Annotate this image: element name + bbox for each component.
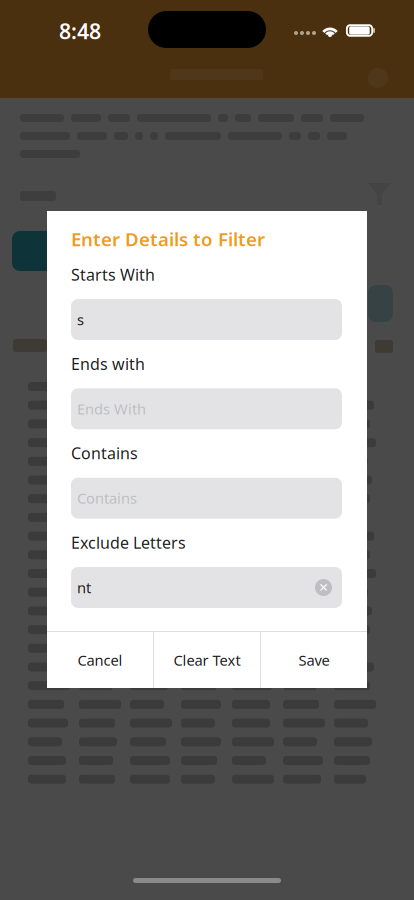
staticText: Enter Details to Filter xyxy=(71,227,265,251)
staticText: Contains xyxy=(77,488,137,508)
staticText: Clear Text xyxy=(173,650,240,670)
staticText: s xyxy=(77,310,84,329)
staticText: Contains xyxy=(71,442,138,464)
staticText: ✕ xyxy=(318,581,328,594)
staticText: Starts With xyxy=(71,264,155,285)
staticText: nt xyxy=(77,578,91,597)
button[interactable]: Save xyxy=(261,632,367,688)
staticText: Exclude Letters xyxy=(71,532,186,553)
button[interactable]: Clear Text xyxy=(154,632,260,688)
staticText: 8:48 xyxy=(59,17,101,45)
staticText: Save xyxy=(298,650,329,670)
button[interactable]: Cancel xyxy=(47,632,153,688)
staticText: Cancel xyxy=(77,650,122,670)
staticText: Ends With xyxy=(77,399,146,419)
staticText: Ends with xyxy=(71,353,145,374)
